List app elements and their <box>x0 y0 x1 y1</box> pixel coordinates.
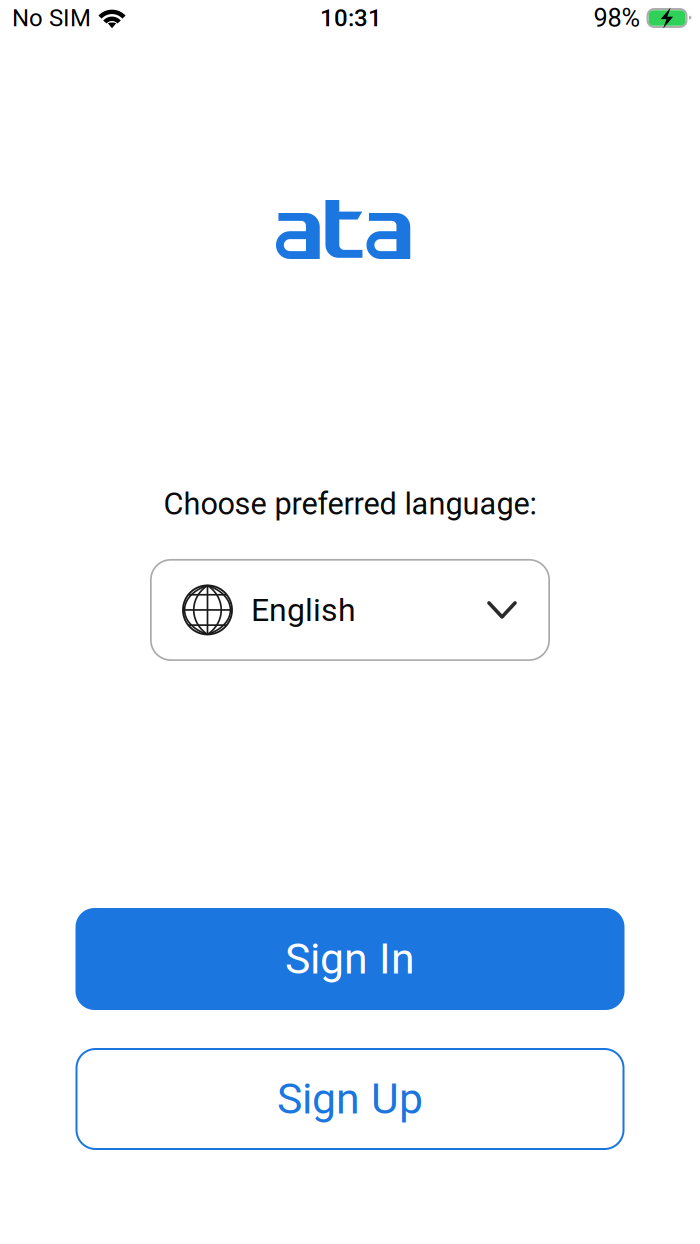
staticText: Sign In <box>285 934 415 984</box>
staticText: 10:31 <box>320 4 382 32</box>
button[interactable]: Sign Up <box>75 1048 624 1150</box>
button[interactable]: Choose preferred language, English <box>150 559 550 661</box>
staticText: No SIM <box>12 4 91 32</box>
staticText: Sign Up <box>277 1074 423 1124</box>
staticText: 98% <box>593 3 640 33</box>
staticText: Choose preferred language: <box>163 486 536 522</box>
staticText: English <box>251 591 356 629</box>
button[interactable]: Sign In <box>75 908 624 1010</box>
